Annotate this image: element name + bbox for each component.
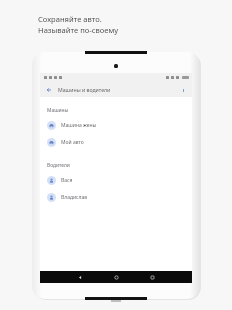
button[interactable]: Машина жены — [40, 117, 192, 134]
staticText: Машины и водители — [58, 86, 111, 93]
button[interactable]: Главный экран — [111, 272, 121, 282]
staticText: Вася — [61, 177, 73, 184]
staticText: Машина жены — [61, 122, 97, 129]
staticText: Владислав — [61, 194, 88, 201]
button[interactable]: Вася — [40, 172, 192, 189]
button[interactable]: Назад — [75, 272, 85, 282]
button[interactable]: Ещё — [178, 85, 188, 95]
staticText: Водители — [47, 162, 70, 169]
button[interactable]: Владислав — [40, 189, 192, 206]
staticText: Машины — [47, 107, 69, 114]
staticText: Мой авто — [61, 139, 84, 146]
button[interactable]: Мой авто — [40, 134, 192, 151]
staticText: Сохраняйте авто. — [38, 14, 102, 24]
button[interactable]: Обзор — [147, 272, 157, 282]
staticText: Называйте по-своему — [38, 25, 119, 35]
button[interactable]: Назад — [44, 85, 54, 95]
